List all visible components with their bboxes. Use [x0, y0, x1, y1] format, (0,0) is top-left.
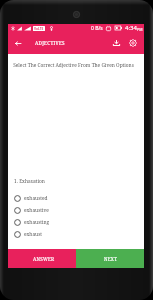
button[interactable]: Settings [124, 32, 142, 54]
button[interactable]: NEXT [76, 249, 144, 268]
staticText: VoLTE [34, 27, 44, 31]
button[interactable]: exhaustive [8, 204, 144, 216]
button[interactable]: exhausting [8, 216, 144, 228]
staticText: exhausted [24, 195, 48, 202]
button[interactable]: exhausted [8, 192, 144, 204]
button[interactable]: Download [108, 32, 124, 54]
button[interactable]: exhaust [8, 228, 144, 240]
staticText: exhaustive [24, 207, 49, 214]
staticText: ADJECTIVES [35, 40, 65, 46]
staticText: PM [137, 27, 143, 32]
staticText: Select The Correct Adjective From The Gi… [13, 62, 134, 69]
staticText: 1. Exhaustion [14, 178, 45, 185]
button[interactable]: Back [8, 32, 27, 54]
staticText: 4:34 [125, 24, 137, 32]
staticText: 0 B/s [91, 25, 103, 32]
staticText: exhausting [24, 219, 50, 226]
staticText: ANSWER [33, 256, 55, 262]
staticText: exhaust [24, 231, 42, 238]
staticText: NEXT [104, 256, 118, 262]
button[interactable]: ANSWER [8, 249, 76, 268]
